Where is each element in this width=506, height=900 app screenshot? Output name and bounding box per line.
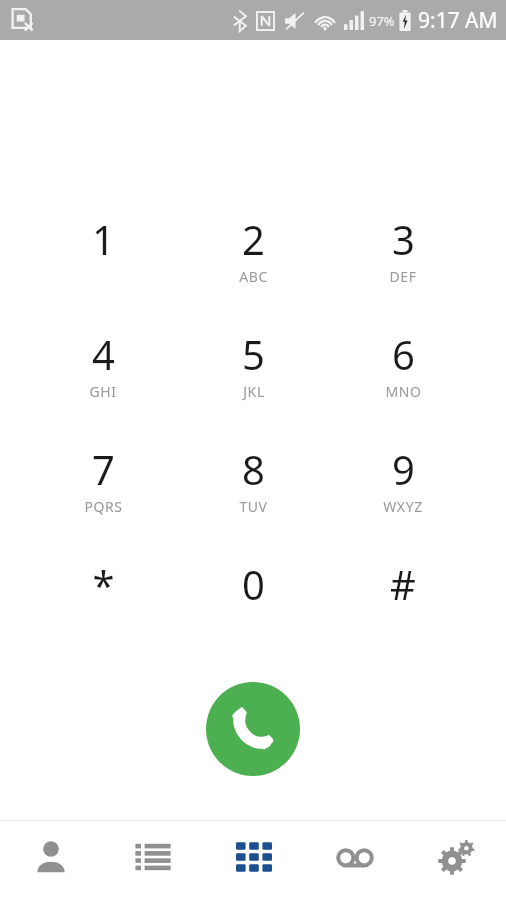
button[interactable]: * — [28, 557, 178, 672]
button[interactable]: Recents — [102, 821, 203, 900]
staticText: 2 — [242, 212, 265, 266]
button[interactable]: 8 — [178, 442, 328, 557]
staticText: 0 — [242, 557, 265, 611]
staticText: 4 — [92, 327, 115, 381]
button[interactable]: 4 — [28, 327, 178, 442]
staticText: 5 — [242, 327, 265, 381]
staticText: # — [390, 557, 416, 611]
staticText: PQRS — [84, 497, 123, 516]
button[interactable]: 7 — [28, 442, 178, 557]
staticText: 97% — [369, 12, 395, 30]
staticText: 6 — [392, 327, 415, 381]
staticText: DEF — [389, 267, 417, 286]
button[interactable]: 9 — [328, 442, 478, 557]
staticText: ABC — [239, 267, 268, 286]
staticText: 7 — [92, 442, 115, 496]
button[interactable]: 0 — [178, 557, 328, 672]
button[interactable]: Voicemail — [304, 821, 405, 900]
button[interactable]: 3 — [328, 212, 478, 327]
button[interactable]: # — [328, 557, 478, 672]
button[interactable]: Keypad — [203, 821, 304, 900]
staticText: 9 — [392, 442, 415, 496]
button[interactable]: 6 — [328, 327, 478, 442]
staticText: 3 — [392, 212, 415, 266]
staticText: GHI — [89, 382, 117, 401]
staticText: JKL — [243, 382, 265, 401]
button[interactable]: Call — [206, 682, 300, 776]
button[interactable]: Settings — [405, 821, 506, 900]
staticText: MNO — [385, 382, 422, 401]
staticText: * — [92, 557, 115, 611]
staticText: WXYZ — [383, 497, 423, 516]
staticText: 1 — [92, 212, 115, 266]
staticText: 9:17 AM — [418, 6, 498, 35]
button[interactable]: 1 — [28, 212, 178, 327]
staticText: 8 — [242, 442, 265, 496]
button[interactable]: 2 — [178, 212, 328, 327]
button[interactable]: 5 — [178, 327, 328, 442]
staticText: TUV — [239, 497, 268, 516]
button[interactable]: Contacts — [0, 821, 102, 900]
